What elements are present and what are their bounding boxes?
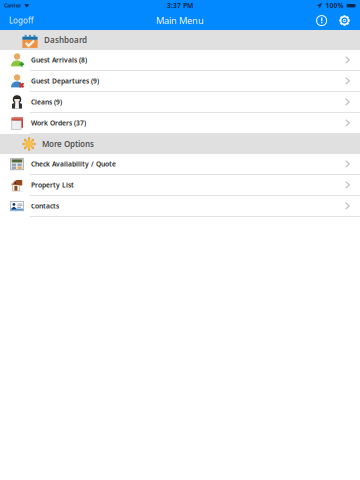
staticText: More Options: [42, 139, 94, 149]
staticText: Carrier: [4, 2, 21, 9]
button[interactable]: Cleans (9): [0, 92, 360, 113]
button[interactable]: Settings: [333, 11, 356, 30]
button[interactable]: Contacts: [0, 196, 360, 217]
button[interactable]: Check Availability / Quote: [0, 154, 360, 175]
button[interactable]: Property List: [0, 175, 360, 196]
staticText: Work Orders (37): [31, 119, 86, 127]
staticText: Guest Departures (9): [31, 77, 99, 85]
staticText: 100%: [325, 1, 343, 10]
button[interactable]: Guest Departures (9): [0, 71, 360, 92]
staticText: Dashboard: [44, 35, 87, 45]
staticText: Check Availability / Quote: [31, 160, 116, 168]
button[interactable]: Logoff: [0, 11, 43, 30]
button[interactable]: Guest Arrivals (8): [0, 50, 360, 71]
button[interactable]: Work Orders (37): [0, 113, 360, 134]
staticText: 3:37 PM: [167, 1, 193, 10]
staticText: Property List: [31, 181, 74, 189]
staticText: Logoff: [9, 15, 34, 26]
staticText: Main Menu: [156, 14, 204, 27]
staticText: Cleans (9): [31, 98, 62, 106]
staticText: Guest Arrivals (8): [31, 56, 87, 64]
staticText: Contacts: [31, 202, 59, 210]
button[interactable]: Information: [310, 11, 333, 30]
